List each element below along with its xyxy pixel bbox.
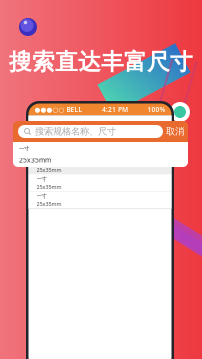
staticText: 取消 [166, 126, 184, 137]
staticText: 25x35mm [36, 200, 61, 208]
staticText: 搜索规格名称、尺寸 [35, 126, 116, 137]
staticText: 搜索直达丰富尺寸 [9, 48, 193, 76]
staticText: 25x35mm [36, 166, 61, 174]
staticText: 4:21 PM [102, 105, 128, 114]
staticText: 一寸 [36, 193, 46, 199]
staticText: 25x35mm [19, 156, 51, 164]
staticText: 一寸 [19, 145, 29, 152]
staticText: 100% [147, 105, 165, 114]
button[interactable]: 一寸 [28, 174, 171, 191]
staticText: 25x35mm [36, 183, 61, 191]
staticText: ●●●○○ BELL [34, 105, 82, 114]
button[interactable]: 一寸 [28, 191, 171, 208]
button[interactable]: 取消 [164, 121, 186, 142]
staticText: 一寸 [36, 176, 46, 182]
